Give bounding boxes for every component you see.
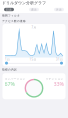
button[interactable]: 日次 <box>4 8 14 11</box>
staticText: リテンション <box>45 77 63 80</box>
staticText: 週次 <box>31 8 37 11</box>
staticText: アクセス数の推移 <box>2 19 26 23</box>
staticText: 31日 <box>56 58 63 61</box>
staticText: 月次 <box>56 8 62 11</box>
staticText: コンバージョン <box>4 77 25 80</box>
staticText: ドリルダウン分析グラフ <box>2 0 46 5</box>
staticText: 33% <box>53 80 63 88</box>
button[interactable]: 週次 <box>29 8 39 11</box>
staticText: 期間フィルタ <box>2 14 20 17</box>
staticText: 1日 <box>5 58 10 61</box>
staticText: 67% <box>4 80 14 88</box>
staticText: 指標の内訳 <box>2 68 17 71</box>
staticText: 15日 <box>29 58 36 61</box>
staticText: 日次 <box>6 8 12 11</box>
button[interactable]: 月次 <box>54 8 64 11</box>
staticText: 7月 <box>31 26 36 29</box>
